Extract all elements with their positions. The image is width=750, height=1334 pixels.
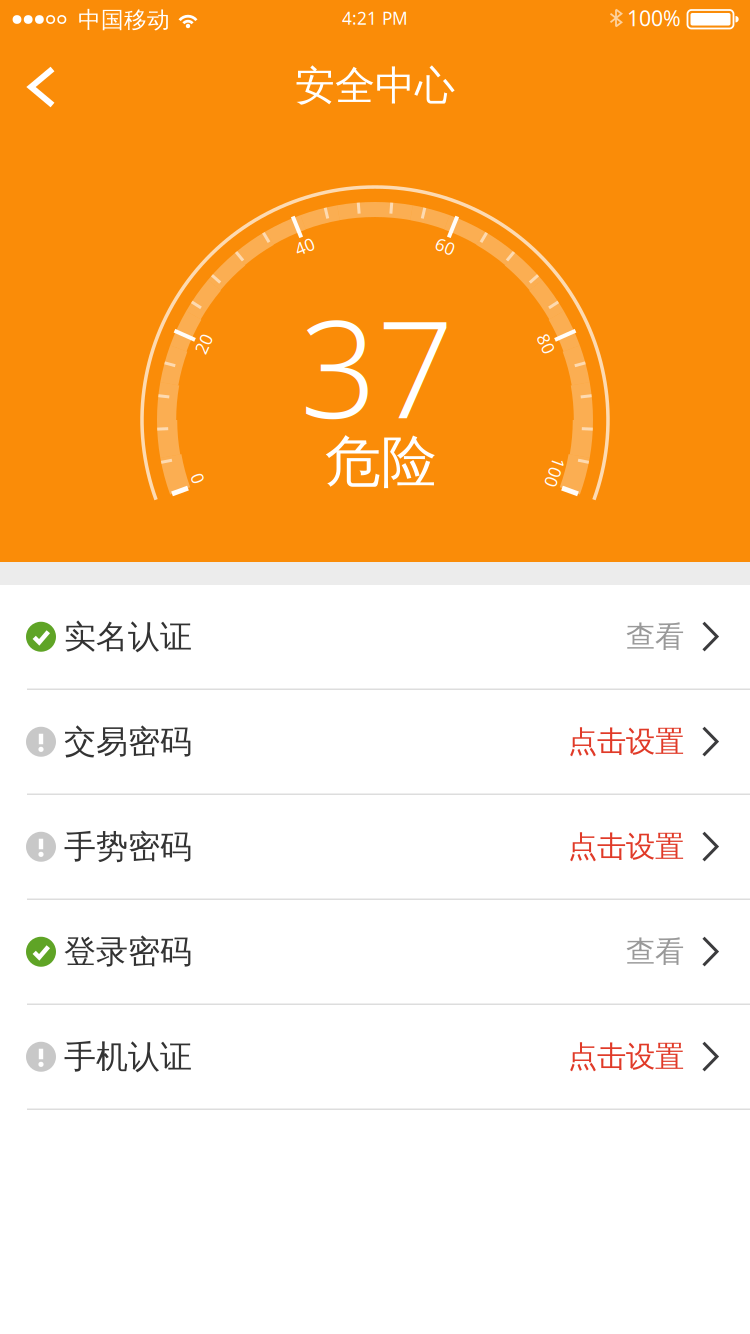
- staticText: 点击设置: [568, 724, 684, 760]
- button[interactable]: 登录密码: [0, 900, 750, 1003]
- staticText: 交易密码: [64, 722, 192, 761]
- staticText: 手势密码: [64, 827, 192, 866]
- staticText: 查看: [626, 934, 684, 970]
- staticText: 100: [540, 461, 570, 484]
- staticText: 点击设置: [568, 1039, 684, 1075]
- staticText: 安全中心: [295, 61, 455, 110]
- staticText: 60: [435, 235, 455, 258]
- button[interactable]: 手机认证: [0, 1005, 750, 1108]
- staticText: 实名认证: [64, 617, 192, 656]
- staticText: 点击设置: [568, 829, 684, 865]
- staticText: 4:21 PM: [342, 6, 408, 29]
- staticText: 登录密码: [64, 932, 192, 971]
- staticText: 100%: [627, 4, 681, 32]
- button[interactable]: Back: [26, 65, 58, 109]
- staticText: 查看: [626, 619, 684, 655]
- staticText: 37: [300, 277, 454, 455]
- staticText: 40: [295, 235, 315, 258]
- button[interactable]: 实名认证: [0, 585, 750, 688]
- staticText: 手机认证: [64, 1037, 192, 1076]
- staticText: 80: [536, 332, 556, 355]
- button[interactable]: 手势密码: [0, 795, 750, 898]
- staticText: 20: [194, 332, 214, 355]
- staticText: 0: [192, 467, 202, 490]
- staticText: 中国移动: [78, 6, 170, 34]
- staticText: 危险: [325, 428, 437, 496]
- button[interactable]: 交易密码: [0, 690, 750, 793]
